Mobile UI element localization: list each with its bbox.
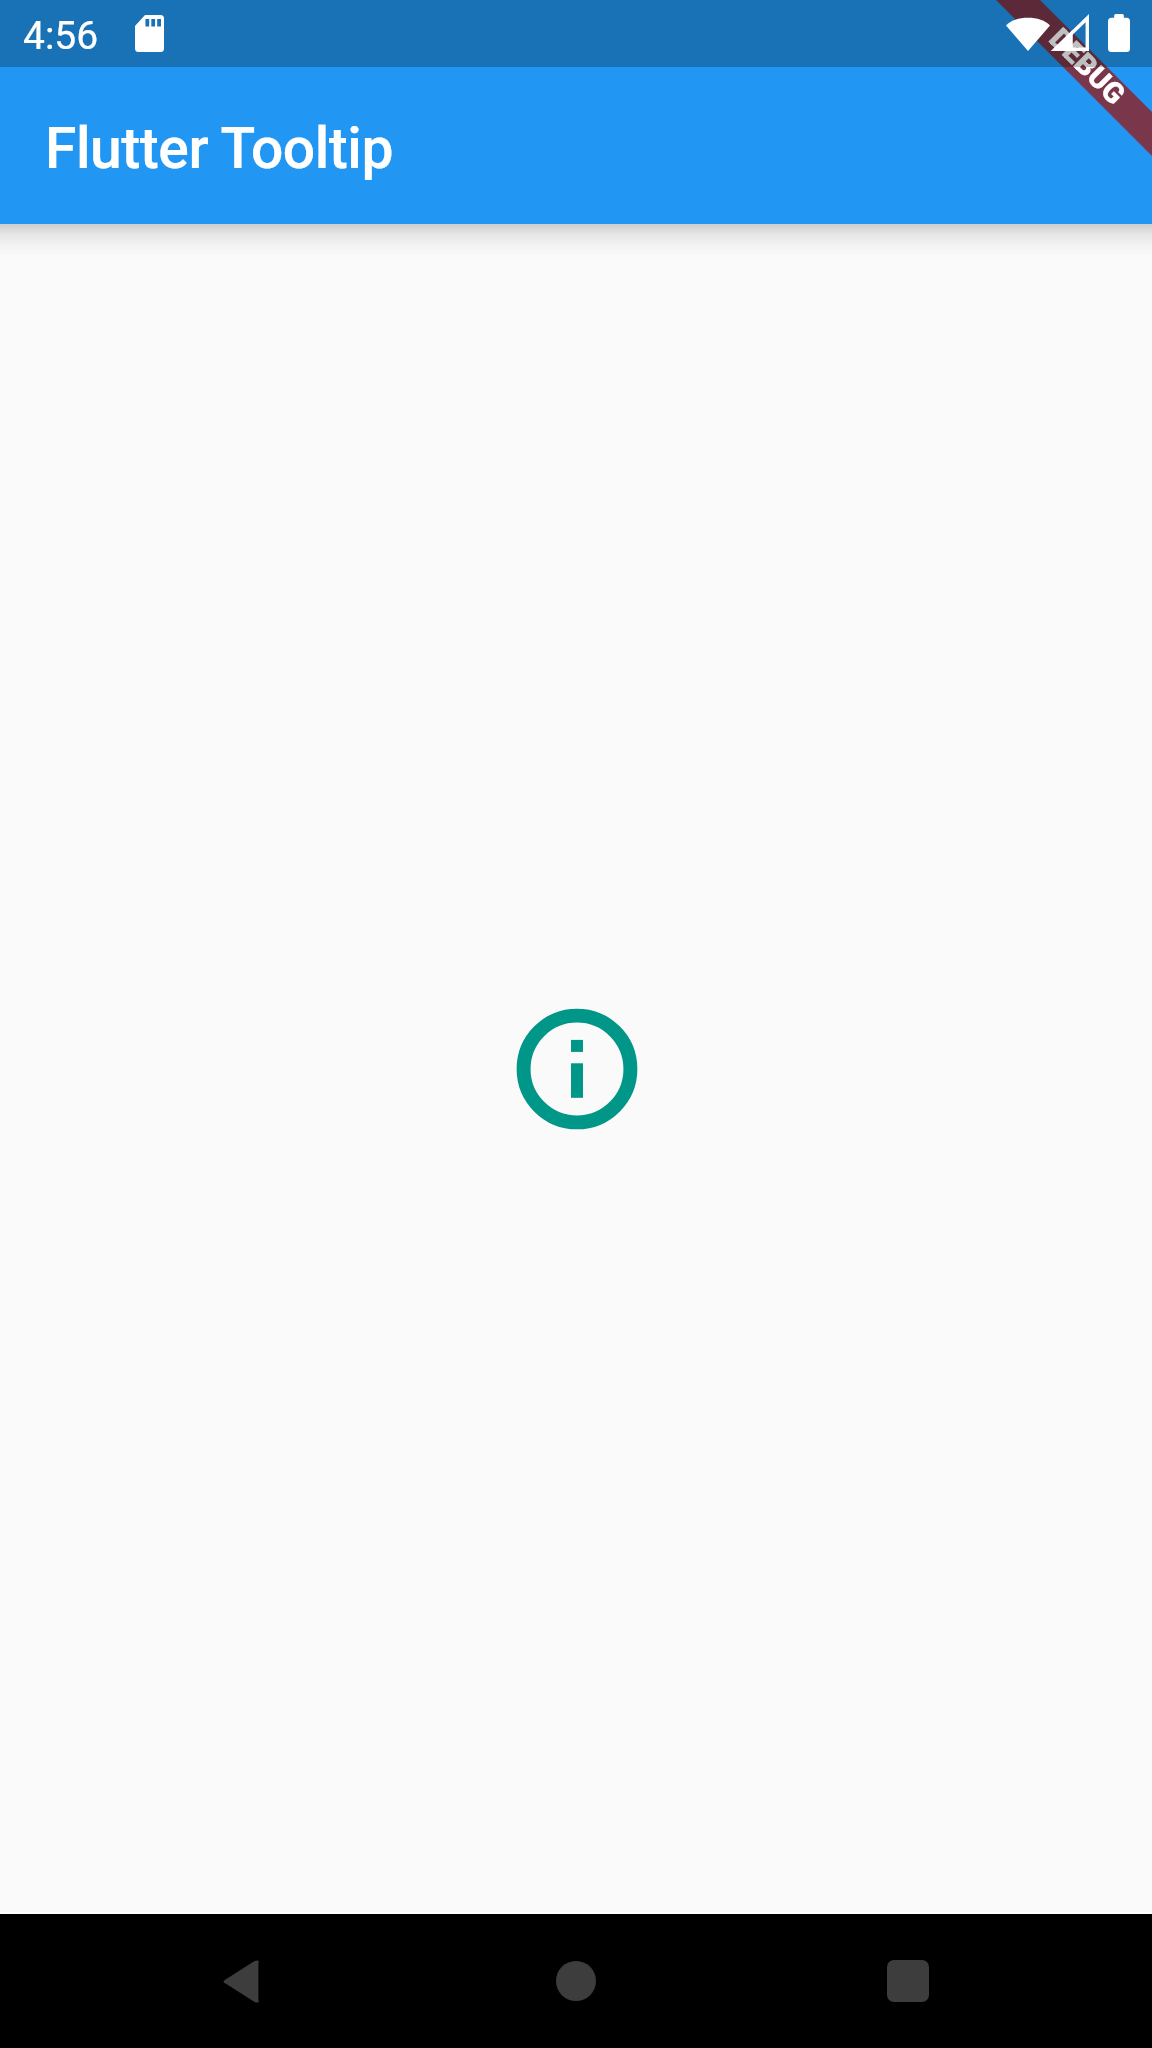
staticText: Flutter Tooltip — [45, 115, 393, 182]
button[interactable]: Home — [556, 1961, 596, 2001]
button[interactable]: Back — [221, 1959, 260, 2004]
staticText: DEBUG — [1042, 21, 1132, 111]
staticText: 4:56 — [23, 13, 99, 59]
button[interactable]: Information — [505, 997, 649, 1141]
button[interactable]: Recent apps — [887, 1960, 929, 2002]
